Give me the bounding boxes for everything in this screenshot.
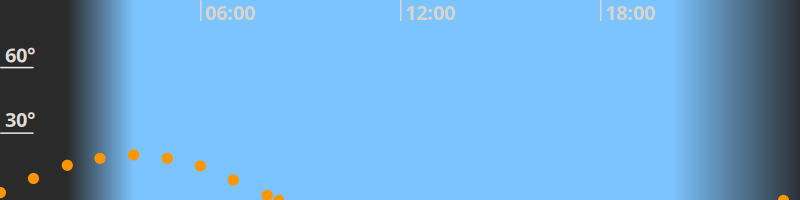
staticText: 30° bbox=[5, 106, 35, 133]
staticText: 06:00 bbox=[205, 0, 255, 26]
staticText: 60° bbox=[5, 41, 35, 68]
staticText: 18:00 bbox=[605, 0, 655, 26]
staticText: 12:00 bbox=[405, 0, 455, 26]
